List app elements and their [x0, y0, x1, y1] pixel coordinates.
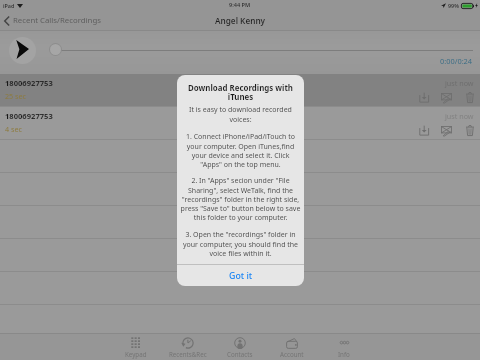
staticText: 9:44 PM	[229, 1, 251, 9]
button[interactable]: 18006927753	[0, 107, 480, 140]
button[interactable]: Delete	[460, 90, 479, 104]
button[interactable]: Account	[266, 334, 318, 360]
button[interactable]: Delete	[460, 123, 479, 137]
staticText: Info	[338, 350, 350, 358]
button[interactable]: Download	[414, 90, 433, 104]
staticText: Download Recordings with iTunes	[179, 83, 302, 103]
button[interactable]: 18006927753	[0, 74, 480, 107]
button[interactable]: Recent Calls/Recordings	[0, 13, 107, 28]
staticText: 18006927753	[5, 78, 53, 88]
button[interactable]: Got it	[177, 265, 304, 286]
staticText: 3. Open the "recordings" folder in your …	[179, 230, 302, 258]
staticText: 1. Connect iPhone/iPad/iTouch to your co…	[179, 132, 302, 169]
button[interactable]: Email	[437, 123, 456, 137]
button[interactable]: Keypad	[110, 334, 162, 360]
button[interactable]: Email	[437, 90, 456, 104]
staticText: Angel Kenny	[215, 15, 266, 26]
staticText: iPad	[3, 2, 15, 9]
staticText: Recents&Rec	[169, 350, 207, 358]
button[interactable]: Contacts	[214, 334, 266, 360]
button[interactable]: Play	[9, 37, 36, 64]
button[interactable]: Recents&Rec	[162, 334, 214, 360]
staticText: just now	[445, 78, 474, 88]
staticText: Contacts	[227, 350, 253, 358]
staticText: 2. In "Apps" secion under "File Sharing"…	[179, 176, 302, 222]
staticText: 25 sec	[5, 91, 27, 101]
staticText: 4 sec	[5, 124, 22, 134]
button[interactable]: Info	[318, 334, 370, 360]
staticText: Recent Calls/Recordings	[13, 15, 101, 26]
staticText: Account	[280, 350, 304, 358]
button[interactable]: Download	[414, 123, 433, 137]
staticText: 18006927753	[5, 111, 53, 121]
staticText: It is easy to download recorded voices:	[179, 105, 302, 124]
staticText: 99%	[448, 2, 459, 9]
button[interactable]: Seek	[49, 43, 62, 56]
staticText: Keypad	[125, 350, 147, 358]
staticText: Got it	[229, 270, 253, 282]
staticText: just now	[445, 111, 474, 121]
staticText: 0:00/0:24	[440, 56, 473, 66]
